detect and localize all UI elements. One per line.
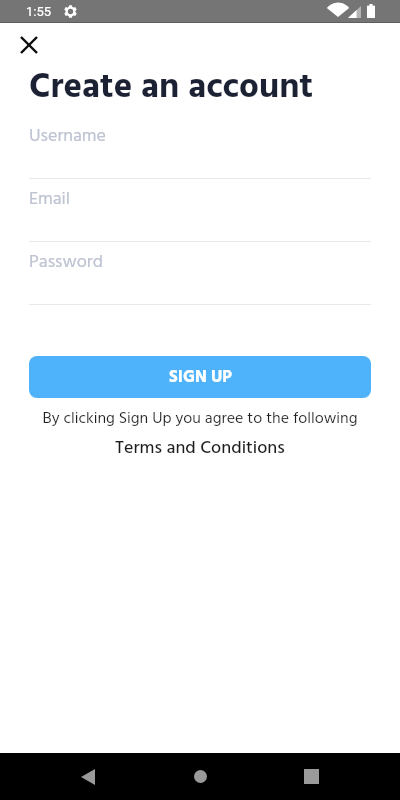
staticText: By clicking Sign Up you agree to the fol… xyxy=(0,406,400,432)
button[interactable]: Back xyxy=(64,753,112,800)
staticText: Terms and Conditions xyxy=(115,434,285,463)
button[interactable]: Password xyxy=(29,240,371,296)
button[interactable]: Username xyxy=(29,114,371,170)
button[interactable]: Email xyxy=(29,177,371,233)
staticText: SIGN UP xyxy=(169,364,232,391)
staticText: Create an account xyxy=(29,60,313,116)
staticText: Password xyxy=(29,248,103,277)
staticText: Username xyxy=(29,122,106,151)
staticText: Email xyxy=(29,185,70,214)
staticText: 1:55 xyxy=(26,4,52,19)
other: Settings xyxy=(64,5,77,18)
button[interactable]: Home xyxy=(176,753,224,800)
button[interactable]: SIGN UP xyxy=(29,356,371,398)
button[interactable]: Close xyxy=(14,30,43,59)
button[interactable]: Recent apps xyxy=(288,753,336,800)
button[interactable]: Terms and Conditions xyxy=(115,434,285,463)
